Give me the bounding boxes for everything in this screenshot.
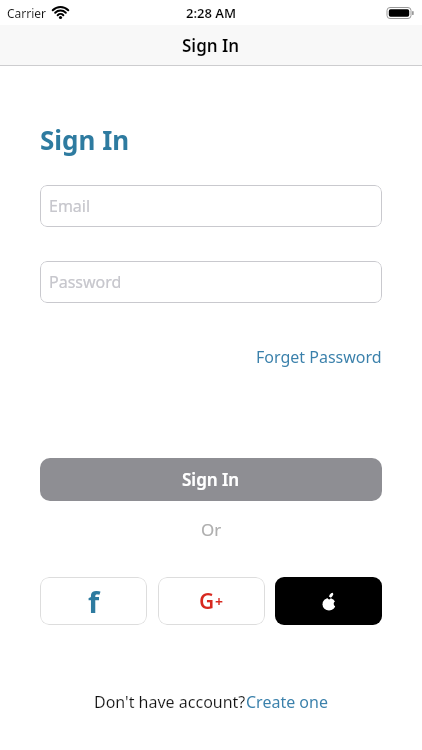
staticText: Carrier (7, 5, 47, 21)
button[interactable] (275, 577, 382, 625)
staticText: Create one (246, 691, 328, 713)
staticText: Or (201, 518, 222, 541)
staticText: Sign In (40, 122, 130, 157)
button[interactable]: Email (40, 185, 382, 227)
staticText: G (199, 587, 215, 616)
button[interactable]: Password (40, 261, 382, 303)
button[interactable]: G (158, 577, 265, 625)
button[interactable]: Forget Password (256, 346, 382, 368)
staticText: + (215, 592, 224, 611)
staticText: Sign In (182, 468, 240, 491)
staticText: Don't have account? (94, 691, 246, 713)
staticText: Email (49, 195, 91, 217)
button[interactable]: Sign In (40, 458, 382, 501)
button[interactable]: Create one (246, 691, 328, 713)
staticText: Sign In (182, 34, 240, 57)
staticText: Password (49, 271, 122, 293)
button[interactable]: f (40, 577, 147, 625)
staticText: Forget Password (256, 346, 382, 368)
staticText: 2:28 AM (186, 4, 237, 22)
staticText: f (88, 582, 100, 621)
